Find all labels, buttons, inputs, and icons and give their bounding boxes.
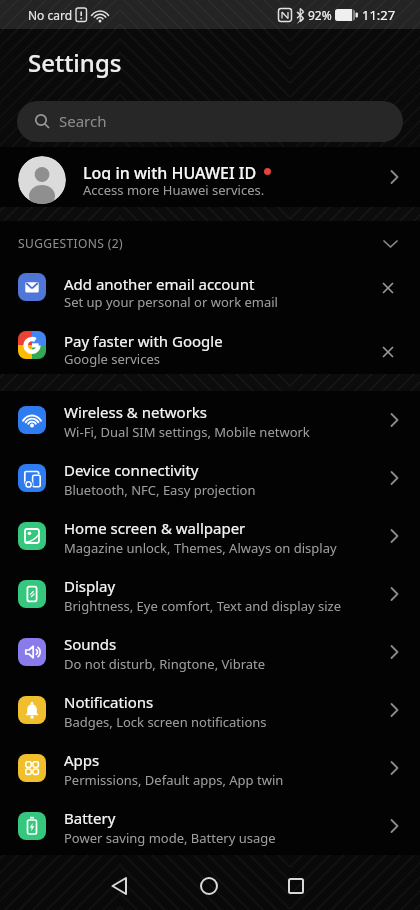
staticText: Search: [59, 111, 107, 131]
staticText: 11:27: [362, 6, 396, 24]
staticText: Brightness, Eye comfort, Text and displa…: [64, 597, 341, 615]
button[interactable]: Search: [17, 101, 403, 142]
button[interactable]: [272, 864, 320, 908]
button[interactable]: Device connectivity: [0, 449, 420, 507]
staticText: Add another email account: [64, 274, 255, 294]
button[interactable]: Display: [0, 565, 420, 623]
staticText: Wi-Fi, Dual SIM settings, Mobile network: [64, 423, 310, 441]
staticText: Bluetooth, NFC, Easy projection: [64, 481, 256, 499]
button[interactable]: Log in with HUAWEI ID: [0, 147, 420, 207]
staticText: Log in with HUAWEI ID: [83, 162, 257, 180]
button[interactable]: Sounds: [0, 623, 420, 681]
staticText: Do not disturb, Ringtone, Vibrate: [64, 655, 266, 673]
button[interactable]: [185, 864, 233, 908]
button[interactable]: Add another email account: [0, 262, 420, 319]
button[interactable]: Wireless & networks: [0, 391, 420, 449]
staticText: Permissions, Default apps, App twin: [64, 771, 284, 789]
button[interactable]: [95, 864, 143, 908]
button[interactable]: Pay faster with Google: [0, 319, 420, 376]
staticText: Apps: [64, 750, 100, 770]
staticText: Magazine unlock, Themes, Always on displ…: [64, 539, 337, 557]
button[interactable]: Home screen & wallpaper: [0, 507, 420, 565]
button[interactable]: Battery: [0, 797, 420, 855]
staticText: SUGGESTIONS (2): [18, 235, 124, 251]
staticText: Battery: [64, 808, 116, 828]
staticText: Google services: [64, 350, 160, 368]
staticText: Pay faster with Google: [64, 331, 223, 351]
staticText: Access more Huawei services.: [83, 181, 265, 199]
staticText: Wireless & networks: [64, 402, 208, 422]
staticText: Badges, Lock screen notifications: [64, 713, 267, 731]
staticText: Home screen & wallpaper: [64, 518, 246, 538]
staticText: Set up your personal or work email: [64, 293, 278, 311]
staticText: Settings: [28, 46, 122, 79]
button[interactable]: Apps: [0, 739, 420, 797]
staticText: Sounds: [64, 634, 117, 654]
staticText: Notifications: [64, 692, 154, 712]
staticText: 92%: [308, 7, 332, 23]
staticText: No card: [28, 7, 73, 23]
button[interactable]: Notifications: [0, 681, 420, 739]
staticText: Power saving mode, Battery usage: [64, 829, 276, 847]
staticText: Display: [64, 576, 116, 596]
staticText: Device connectivity: [64, 460, 199, 480]
